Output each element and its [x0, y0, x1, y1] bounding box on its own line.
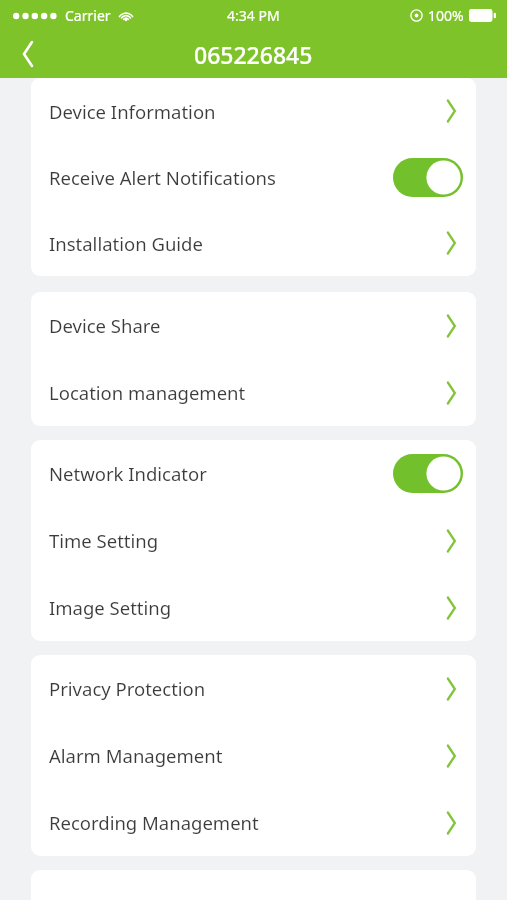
staticText: Recording Management	[49, 810, 259, 835]
button[interactable]: Alarm Management	[31, 722, 476, 789]
staticText: Privacy Protection	[49, 676, 206, 701]
button[interactable]: Time Setting	[31, 507, 476, 574]
button[interactable]: Toggle switch, on	[393, 158, 463, 197]
staticText: 4:34 PM	[227, 6, 280, 25]
staticText: Time Setting	[49, 528, 159, 553]
button[interactable]: Toggle switch, on	[393, 454, 463, 493]
button[interactable]: Image Setting	[31, 574, 476, 641]
button[interactable]: Privacy Protection	[31, 655, 476, 722]
button[interactable]: Device Share	[31, 292, 476, 359]
button[interactable]: Location management	[31, 359, 476, 426]
staticText: 100%	[428, 6, 464, 25]
button[interactable]: Recording Management	[31, 789, 476, 856]
staticText: Device Share	[49, 313, 161, 338]
staticText: Image Setting	[49, 595, 172, 620]
staticText: Network Indicator	[49, 461, 207, 486]
button[interactable]: Network Indicator	[31, 440, 476, 507]
staticText: Carrier	[65, 6, 111, 25]
staticText: Alarm Management	[49, 743, 223, 768]
button[interactable]: Back	[0, 30, 54, 78]
staticText: Location management	[49, 380, 246, 405]
staticText: Installation Guide	[49, 231, 203, 256]
staticText: Device Information	[49, 99, 216, 124]
button[interactable]: Device Information	[31, 78, 476, 144]
button[interactable]: Installation Guide	[31, 210, 476, 276]
staticText: Receive Alert Notifications	[49, 165, 276, 190]
button[interactable]: Receive Alert Notifications	[31, 144, 476, 210]
staticText: 065226845	[194, 39, 313, 70]
